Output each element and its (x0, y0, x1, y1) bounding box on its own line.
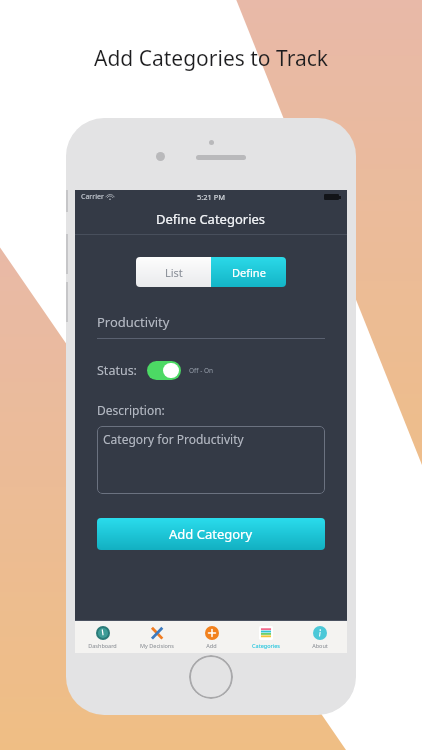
button[interactable]: Productivity (97, 313, 325, 339)
button[interactable]: Categories (239, 621, 292, 653)
staticText: Status: (97, 362, 137, 379)
staticText: Carrier (81, 192, 104, 202)
button[interactable]: Add (185, 621, 238, 653)
button[interactable]: Add Category (97, 518, 325, 550)
staticText: Define (232, 265, 266, 280)
button[interactable]: List (136, 257, 211, 287)
staticText: Add Category (169, 525, 253, 543)
button[interactable]: Category for Productivity (97, 426, 325, 494)
button[interactable]: Status toggle, on (147, 361, 181, 380)
button[interactable]: Define (211, 257, 286, 287)
button[interactable]: About (293, 621, 346, 653)
staticText: 5:21 PM (197, 192, 226, 202)
button[interactable]: Dashboard (76, 621, 129, 653)
button[interactable]: Home (189, 655, 233, 699)
staticText: About (312, 642, 328, 649)
staticText: Define Categories (156, 210, 266, 228)
staticText: Add (206, 642, 217, 649)
staticText: Categories (252, 642, 280, 649)
staticText: List (165, 265, 183, 280)
button[interactable]: My Decisions (130, 621, 183, 653)
staticText: Category for Productivity (103, 431, 244, 447)
staticText: Productivity (97, 313, 170, 331)
staticText: Add Categories to Track (0, 44, 422, 73)
staticText: Description: (97, 402, 165, 418)
staticText: Dashboard (88, 642, 117, 649)
staticText: My Decisions (140, 642, 174, 649)
staticText: Off - On (189, 366, 214, 375)
